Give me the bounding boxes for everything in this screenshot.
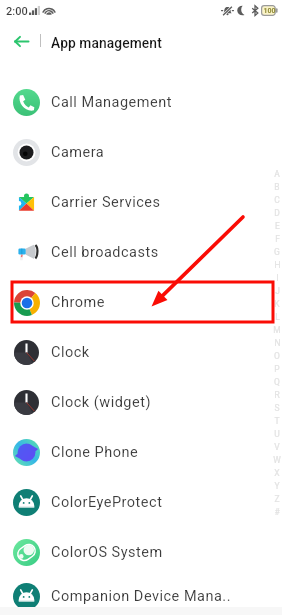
staticText: I: [276, 273, 279, 283]
staticText: Y: [274, 481, 280, 491]
staticText: Clone Phone: [51, 444, 139, 461]
staticText: U: [274, 429, 280, 439]
staticText: B: [274, 182, 280, 192]
staticText: A: [274, 169, 280, 179]
button[interactable]: Back: [5, 26, 37, 56]
button[interactable]: Call Management: [0, 77, 282, 127]
button[interactable]: Camera: [0, 127, 282, 177]
staticText: J: [275, 286, 280, 296]
staticText: Camera: [51, 144, 105, 161]
staticText: Call Management: [51, 94, 172, 111]
staticText: Companion Device Mana..: [51, 588, 231, 605]
button[interactable]: Clone Phone: [0, 427, 282, 477]
staticText: S: [274, 403, 280, 413]
staticText: 100: [263, 7, 276, 15]
staticText: W: [273, 455, 281, 465]
button[interactable]: ColorEyeProtect: [0, 477, 282, 527]
staticText: N: [274, 338, 281, 348]
staticText: P: [274, 364, 280, 374]
button[interactable]: Clock: [0, 327, 282, 377]
staticText: H: [274, 260, 281, 270]
staticText: Z: [274, 494, 280, 504]
staticText: Clock (widget): [51, 394, 151, 411]
staticText: Cell broadcasts: [51, 244, 159, 261]
button[interactable]: ColorOS System: [0, 527, 282, 577]
staticText: #: [274, 507, 280, 517]
staticText: 2:00: [6, 5, 28, 18]
button[interactable]: Clock (widget): [0, 377, 282, 427]
staticText: ColorEyeProtect: [51, 494, 163, 511]
staticText: K: [274, 299, 280, 309]
staticText: Q: [274, 377, 280, 387]
staticText: O: [274, 351, 280, 361]
staticText: Clock: [51, 344, 90, 361]
staticText: E: [275, 221, 280, 231]
staticText: V: [274, 442, 280, 452]
staticText: ColorOS System: [51, 544, 163, 561]
staticText: C: [274, 195, 280, 205]
button[interactable]: Companion Device Mana..: [0, 577, 282, 615]
button[interactable]: Cell broadcasts: [0, 227, 282, 277]
staticText: T: [274, 416, 280, 426]
staticText: Chrome: [51, 294, 105, 311]
staticText: G: [274, 247, 280, 257]
staticText: L: [275, 312, 280, 322]
staticText: M: [273, 325, 281, 335]
staticText: Carrier Services: [51, 194, 161, 211]
staticText: App management: [51, 35, 162, 51]
button[interactable]: Carrier Services: [0, 177, 282, 227]
staticText: X: [274, 468, 280, 478]
staticText: R: [274, 390, 280, 400]
staticText: D: [274, 208, 280, 218]
staticText: F: [275, 234, 280, 244]
button[interactable]: Chrome: [0, 277, 282, 327]
